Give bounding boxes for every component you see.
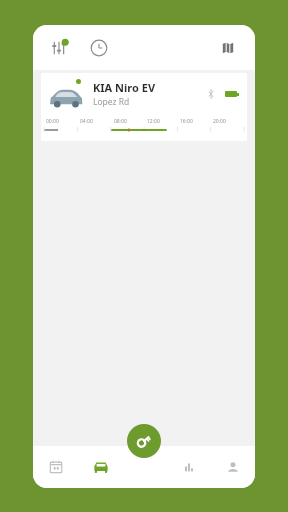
button[interactable]: Calendar bbox=[33, 446, 78, 488]
button[interactable]: Map bbox=[215, 35, 241, 61]
button[interactable]: Statistics bbox=[167, 446, 211, 488]
button[interactable]: Profile bbox=[211, 446, 255, 488]
button[interactable]: KIA Niro EV bbox=[41, 73, 247, 141]
button[interactable]: Unlock key bbox=[127, 424, 161, 458]
staticText: KIA Niro EV bbox=[93, 80, 156, 95]
staticText: 12:00 bbox=[147, 118, 160, 125]
staticText: 00:00 bbox=[46, 118, 59, 125]
staticText: 04:00 bbox=[80, 118, 93, 125]
button[interactable]: Filter bbox=[47, 35, 73, 61]
button[interactable]: Vehicles bbox=[78, 446, 123, 488]
staticText: 16:00 bbox=[180, 118, 193, 125]
staticText: 20:00 bbox=[213, 118, 226, 125]
staticText: 08:00 bbox=[114, 118, 127, 125]
button[interactable]: History bbox=[86, 35, 112, 61]
staticText: Lopez Rd bbox=[93, 96, 130, 108]
